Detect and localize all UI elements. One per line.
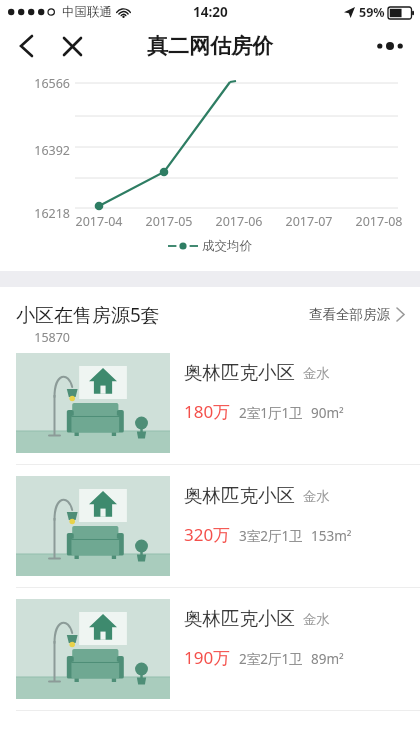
staticText: 真二网估房价: [147, 33, 273, 59]
staticText: 奥林匹克小区: [184, 361, 295, 384]
staticText: 15870: [0, 329, 70, 346]
staticText: 奥林匹克小区: [184, 484, 295, 507]
staticText: 奥林匹克小区: [184, 607, 295, 630]
staticText: 2017-06: [206, 213, 272, 230]
staticText: 14:20: [193, 3, 228, 21]
button[interactable]: Back: [6, 26, 46, 66]
staticText: 180万: [184, 400, 231, 423]
button[interactable]: Close: [52, 26, 92, 66]
staticText: 3室2厅1卫: [239, 527, 303, 545]
staticText: 90m²: [311, 404, 344, 422]
staticText: 320万: [184, 523, 231, 546]
staticText: 2017-08: [346, 213, 412, 230]
staticText: 59%: [359, 4, 385, 21]
staticText: 190万: [184, 646, 231, 669]
staticText: 153m²: [311, 527, 352, 545]
staticText: 金水: [303, 365, 330, 382]
staticText: 金水: [303, 611, 330, 628]
staticText: 89m²: [311, 650, 344, 668]
staticText: 16392: [0, 142, 70, 159]
staticText: 2017-05: [136, 213, 202, 230]
staticText: 16044: [0, 268, 70, 285]
staticText: 小区在售房源5套: [16, 302, 160, 328]
button[interactable]: 奥林匹克小区: [0, 588, 420, 710]
button[interactable]: 奥林匹克小区: [0, 342, 420, 464]
staticText: 成交均价: [202, 238, 252, 254]
staticText: 2017-04: [66, 213, 132, 230]
staticText: 2室2厅1卫: [239, 650, 303, 668]
staticText: 中国联通: [62, 4, 112, 20]
staticText: 2017-07: [276, 213, 342, 230]
staticText: 16566: [0, 75, 70, 92]
staticText: 查看全部房源: [309, 306, 390, 323]
staticText: 16218: [0, 205, 70, 222]
button[interactable]: 奥林匹克小区: [0, 465, 420, 587]
button[interactable]: More options: [368, 24, 412, 68]
staticText: 2室1厅1卫: [239, 404, 303, 422]
button[interactable]: 查看全部房源: [307, 298, 406, 331]
staticText: 金水: [303, 488, 330, 505]
